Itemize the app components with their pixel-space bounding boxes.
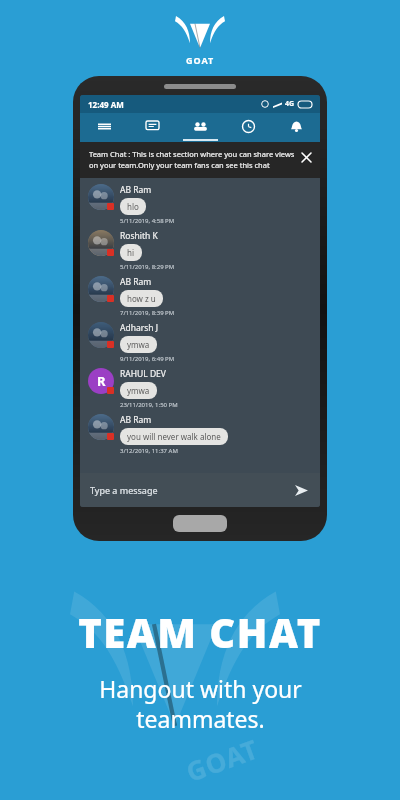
button[interactable]: Roshith K <box>80 230 320 276</box>
button[interactable]: Team <box>176 113 224 139</box>
staticText: 5/11/2019, 8:29 PM <box>120 263 175 271</box>
staticText: 7/11/2019, 8:39 PM <box>120 309 175 317</box>
staticText: 5/11/2019, 4:58 PM <box>120 217 175 225</box>
staticText: 3/12/2019, 11:37 AM <box>120 447 178 455</box>
staticText: GOAT <box>186 54 215 66</box>
staticText: Hangout with your teammates. <box>99 673 302 735</box>
staticText: how z u <box>127 293 156 304</box>
staticText: 12:49 AM <box>88 99 124 110</box>
button[interactable]: Close <box>298 149 314 165</box>
staticText: hi <box>127 247 135 258</box>
staticText: RAHUL DEV <box>120 368 166 380</box>
button[interactable]: AB Ram <box>80 414 320 460</box>
button[interactable]: Send <box>292 481 310 499</box>
staticText: GOAT <box>181 730 264 789</box>
staticText: 9/11/2019, 6:49 PM <box>120 355 175 363</box>
button[interactable]: Menu <box>80 113 128 139</box>
staticText: Roshith K <box>120 230 158 242</box>
button[interactable]: Moments <box>224 113 272 139</box>
staticText: you will never walk alone <box>127 431 221 442</box>
button[interactable]: AB Ram <box>80 276 320 322</box>
button[interactable]: Type a message <box>80 473 320 507</box>
staticText: ymwa <box>127 339 150 350</box>
staticText: 23/11/2019, 1:50 PM <box>120 401 178 409</box>
staticText: AB Ram <box>120 414 152 426</box>
staticText: ymwa <box>127 385 150 396</box>
staticText: Type a message <box>90 484 158 496</box>
staticText: 4G <box>285 99 295 109</box>
staticText: TEAM CHAT <box>78 605 322 659</box>
staticText: hlo <box>127 201 139 212</box>
staticText: Adharsh J <box>120 322 159 334</box>
button[interactable]: AB Ram <box>80 184 320 230</box>
staticText: AB Ram <box>120 184 152 196</box>
button[interactable]: Adharsh J <box>80 322 320 368</box>
button[interactable]: Chats <box>128 113 176 139</box>
button[interactable]: Home <box>173 515 227 532</box>
staticText: Team Chat : This is chat section where y… <box>89 149 298 170</box>
staticText: AB Ram <box>120 276 152 288</box>
button[interactable]: Notifications <box>272 113 320 139</box>
button[interactable]: R <box>80 368 320 414</box>
staticText: R <box>97 372 106 390</box>
